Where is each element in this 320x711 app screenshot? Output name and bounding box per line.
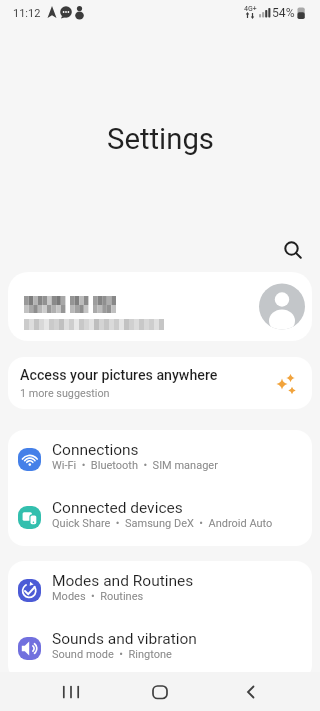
- staticText: Settings: [107, 122, 214, 156]
- staticText: Sound mode • Ringtone: [52, 648, 172, 661]
- button[interactable]: [8, 272, 312, 341]
- button[interactable]: [51, 672, 91, 711]
- button[interactable]: Modes and Routines: [8, 561, 312, 619]
- staticText: 54%: [272, 6, 295, 20]
- button[interactable]: Connected devices: [8, 488, 312, 546]
- staticText: Access your pictures anywhere: [20, 367, 218, 384]
- button[interactable]: Connections: [8, 430, 312, 488]
- staticText: 1 more suggestion: [20, 387, 110, 400]
- button[interactable]: Access your pictures anywhere: [8, 357, 312, 409]
- staticText: Connected devices: [52, 499, 183, 517]
- button[interactable]: Sounds and vibration: [8, 619, 312, 677]
- staticText: Quick Share • Samsung DeX • Android Auto: [52, 517, 273, 530]
- staticText: Modes and Routines: [52, 572, 194, 590]
- staticText: Sounds and vibration: [52, 630, 197, 648]
- staticText: Connections: [52, 441, 139, 459]
- staticText: 11:12: [13, 7, 41, 20]
- staticText: Modes • Routines: [52, 590, 144, 603]
- button[interactable]: [140, 672, 180, 711]
- button[interactable]: [272, 229, 312, 269]
- staticText: Wi-Fi • Bluetooth • SIM manager: [52, 459, 218, 472]
- staticText: 4G+: [244, 5, 257, 13]
- button[interactable]: [231, 672, 271, 711]
